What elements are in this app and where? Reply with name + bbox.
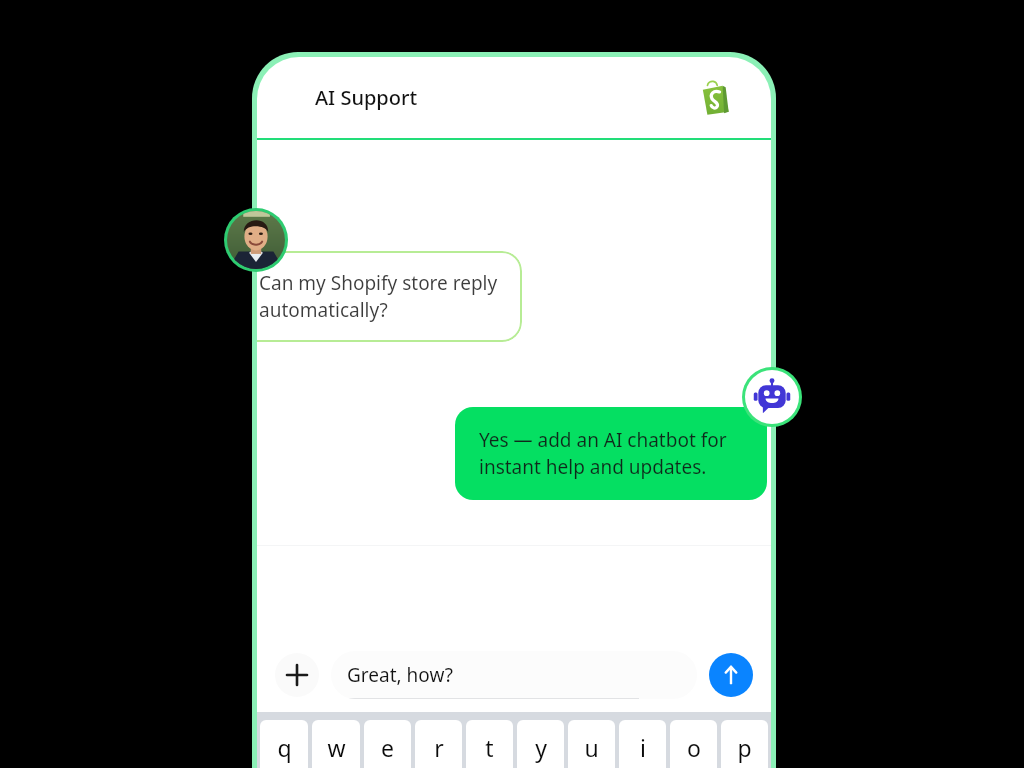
button[interactable]: AI assistant avatar	[742, 367, 802, 427]
button[interactable]: y	[517, 720, 564, 768]
button[interactable]: o	[670, 720, 717, 768]
button[interactable]: w	[312, 720, 360, 768]
staticText: p	[737, 732, 752, 763]
button[interactable]: t	[466, 720, 513, 768]
button[interactable]: Add attachment	[275, 653, 319, 697]
button[interactable]: q	[260, 720, 308, 768]
button[interactable]: u	[568, 720, 615, 768]
staticText: u	[584, 732, 599, 763]
button[interactable]: Yes — add an AI chatbot for instant help…	[455, 407, 767, 500]
button[interactable]: Send message	[709, 653, 753, 697]
staticText: q	[277, 732, 292, 763]
staticText: y	[535, 732, 547, 763]
staticText: r	[434, 732, 444, 763]
staticText: o	[687, 732, 701, 763]
button[interactable]: e	[364, 720, 411, 768]
staticText: e	[381, 732, 394, 763]
button[interactable]: i	[619, 720, 666, 768]
button[interactable]: r	[415, 720, 462, 768]
button[interactable]: Can my Shopify store reply automatically…	[257, 251, 522, 342]
button[interactable]: Great, how?	[331, 651, 697, 699]
staticText: w	[327, 732, 346, 763]
button[interactable]: User avatar	[224, 208, 288, 272]
button[interactable]: Shopify store	[695, 78, 735, 118]
staticText: t	[485, 732, 494, 763]
staticText: Yes — add an AI chatbot for instant help…	[479, 427, 727, 480]
button[interactable]: p	[721, 720, 768, 768]
staticText: i	[640, 732, 646, 763]
staticText: Can my Shopify store reply automatically…	[259, 270, 498, 323]
staticText: AI Support	[315, 84, 418, 111]
staticText: Great, how?	[347, 662, 453, 688]
